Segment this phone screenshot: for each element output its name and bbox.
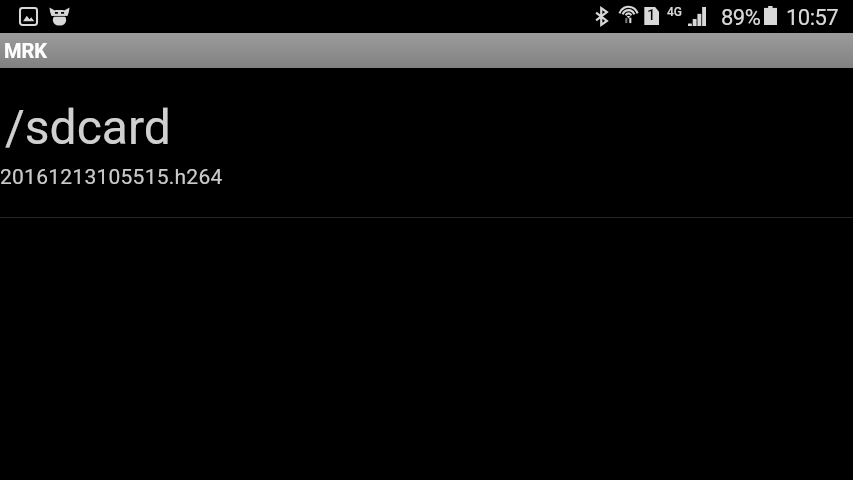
staticText: 89% — [721, 5, 761, 31]
staticText: 4G — [667, 5, 682, 19]
button[interactable]: /sdcard — [0, 68, 853, 217]
button[interactable]: MRK — [0, 33, 853, 68]
staticText: MRK — [4, 39, 48, 62]
other: Screenshot notification — [20, 8, 37, 25]
other: App notification — [49, 7, 70, 26]
staticText: 10:57 — [786, 5, 839, 31]
staticText: 20161213105515.h264 — [0, 165, 223, 190]
staticText: 1 — [647, 6, 656, 24]
staticText: /sdcard — [5, 99, 171, 155]
